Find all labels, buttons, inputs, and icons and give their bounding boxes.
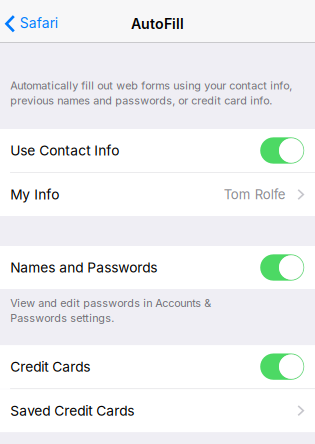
staticText: My Info	[10, 186, 59, 203]
button[interactable]: Safari	[0, 9, 66, 36]
staticText: Credit Cards	[10, 358, 90, 375]
staticText: Saved Credit Cards	[10, 402, 134, 419]
staticText: AutoFill	[131, 15, 184, 32]
button[interactable]: Use Contact Info, on	[260, 137, 304, 164]
button[interactable]: Credit Cards, on	[260, 353, 304, 380]
staticText: Automatically fill out web forms using y…	[10, 79, 292, 107]
staticText: Names and Passwords	[10, 259, 157, 276]
button[interactable]: Saved Credit Cards	[0, 389, 315, 432]
staticText: View and edit passwords in Accounts & Pa…	[10, 296, 211, 325]
button[interactable]: My Info	[0, 173, 315, 216]
button[interactable]: Names and Passwords, on	[260, 254, 304, 281]
staticText: Tom Rolfe	[224, 186, 286, 202]
staticText: Use Contact Info	[10, 142, 119, 159]
staticText: Safari	[20, 15, 58, 31]
